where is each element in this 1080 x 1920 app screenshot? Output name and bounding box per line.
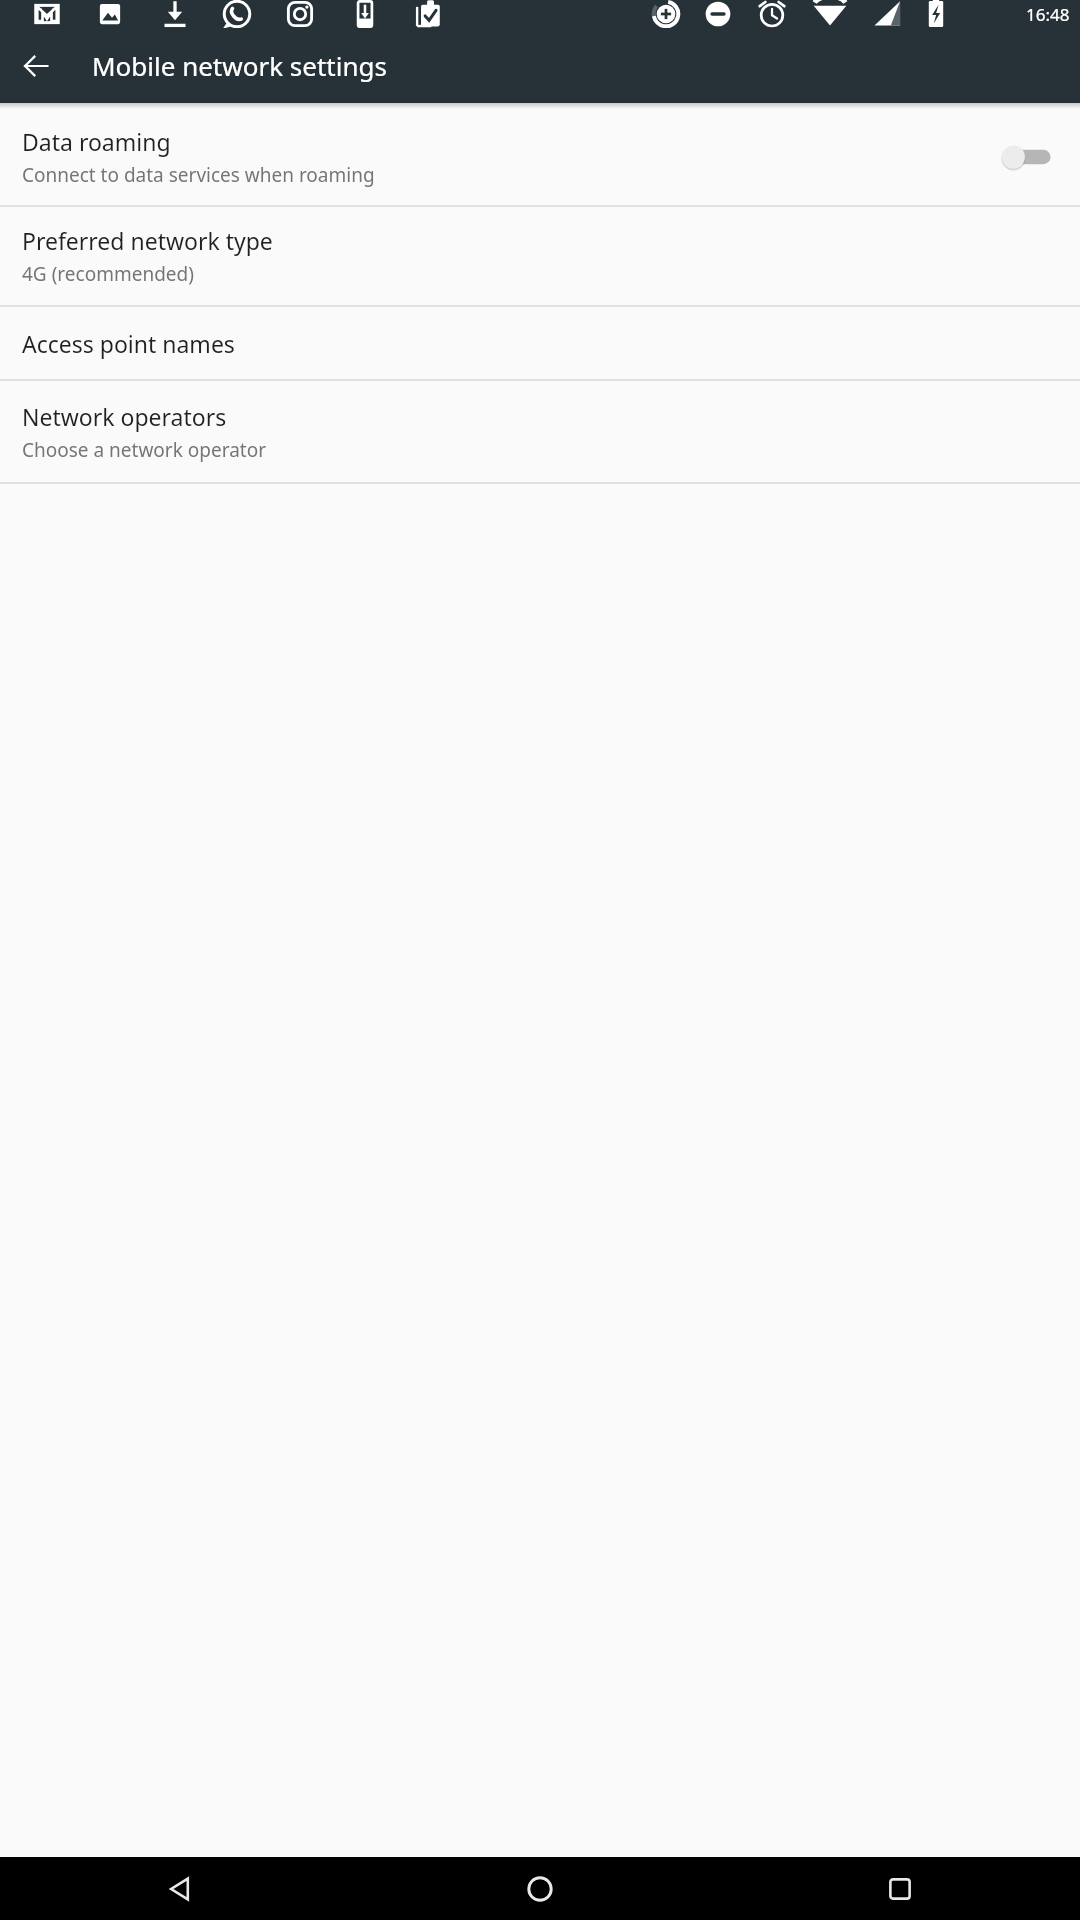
staticText: Network operators [22,401,227,432]
staticText: 16:48 [1026,3,1070,26]
button[interactable]: Recent apps [720,1857,1080,1920]
staticText: Choose a network operator [22,437,266,463]
staticText: Mobile network settings [92,48,387,83]
staticText: Data roaming [22,126,171,157]
button[interactable]: Access point names [0,307,1080,379]
button[interactable]: Back [0,1857,360,1920]
button[interactable]: Back [12,42,60,90]
button[interactable]: Network operators [0,381,1080,482]
staticText: Access point names [22,328,235,359]
staticText: Preferred network type [22,225,273,256]
button[interactable]: Data roaming [0,109,1080,205]
staticText: Connect to data services when roaming [22,162,375,188]
button[interactable]: Preferred network type [0,207,1080,305]
button[interactable]: Data roaming toggle [996,137,1058,177]
staticText: 4G (recommended) [22,261,194,287]
button[interactable]: Home [360,1857,720,1920]
